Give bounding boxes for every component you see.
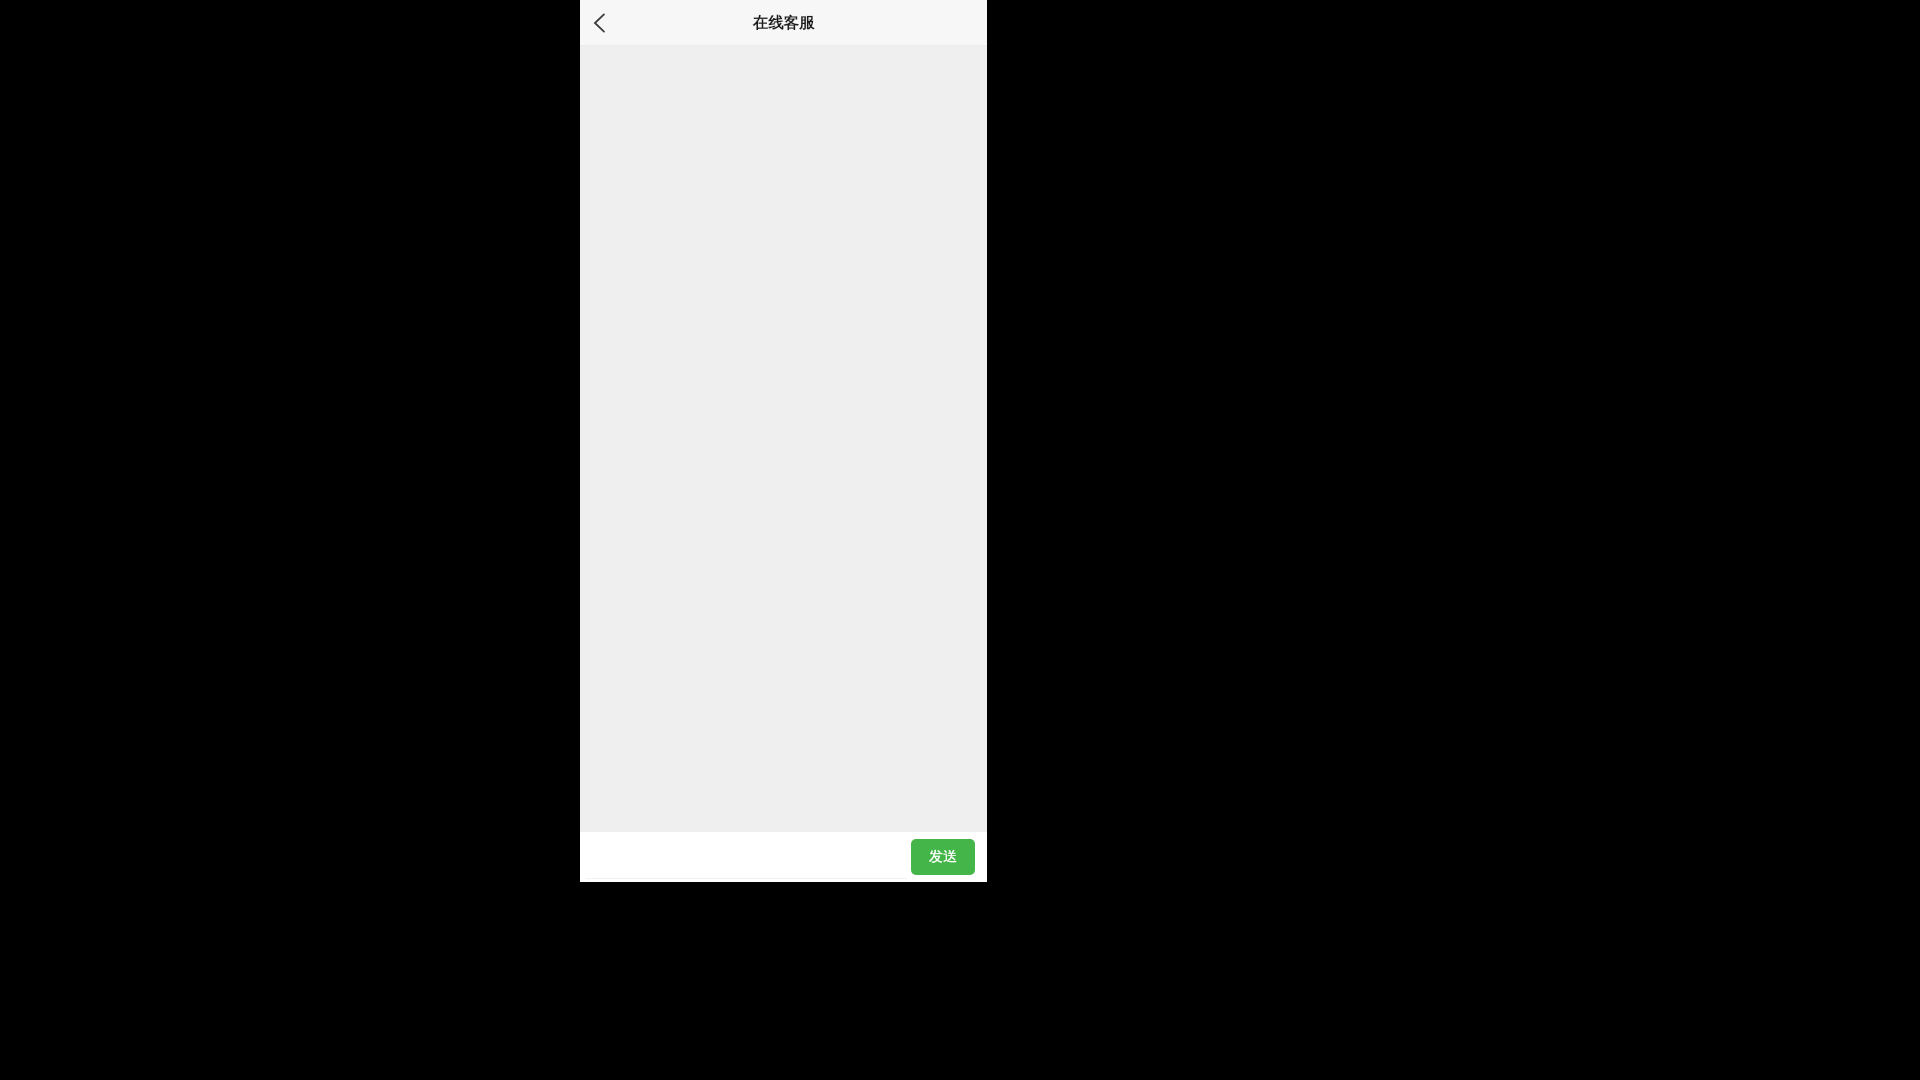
button[interactable]: 发送 [911,839,975,875]
staticText: 发送 [929,848,957,866]
staticText: 在线客服 [580,13,987,33]
button[interactable]: Back [580,0,620,46]
